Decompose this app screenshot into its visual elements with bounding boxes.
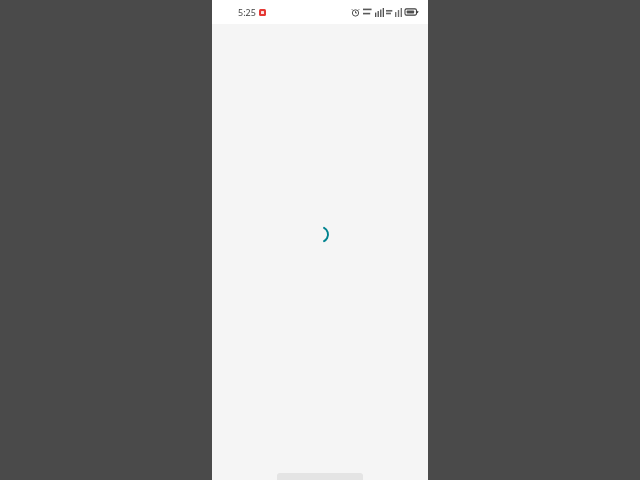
button[interactable]: Loading [310,224,330,244]
other: Signal strength [375,8,384,17]
other: Battery [405,8,418,16]
staticText: 5:25 [238,6,256,18]
other: Signal strength [395,8,402,17]
other: Alarm set [351,8,360,17]
